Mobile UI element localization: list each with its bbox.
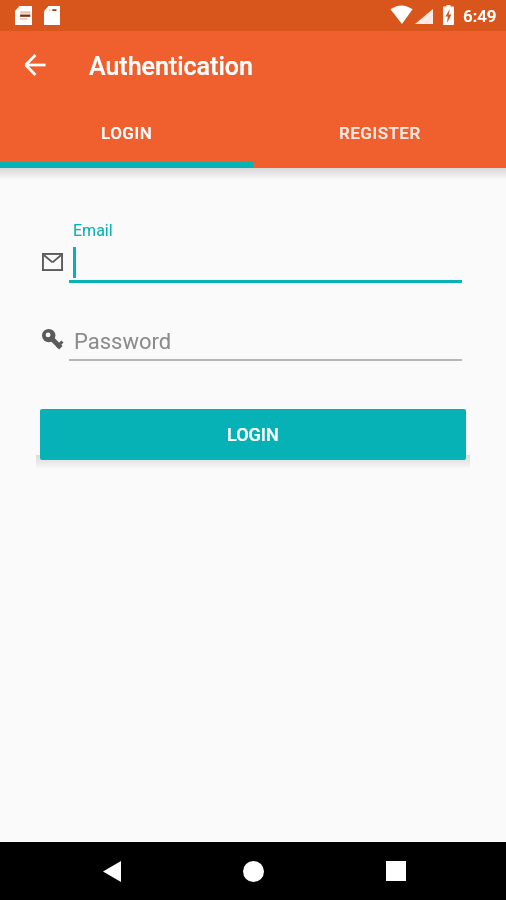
button[interactable]: Recent apps [372,847,420,895]
button[interactable]: LOGIN [40,409,466,460]
staticText: Password [74,329,172,355]
button[interactable]: LOGIN [0,100,253,168]
button[interactable]: Back [88,847,136,895]
button[interactable]: Home [229,847,277,895]
button[interactable]: Navigate back [12,42,58,88]
staticText: Email [73,221,113,240]
staticText: LOGIN [227,424,279,445]
staticText: REGISTER [339,123,421,143]
staticText: 6:49 [463,6,497,26]
staticText: Authentication [89,52,253,81]
staticText: LOGIN [101,123,153,143]
button[interactable]: REGISTER [253,100,506,168]
